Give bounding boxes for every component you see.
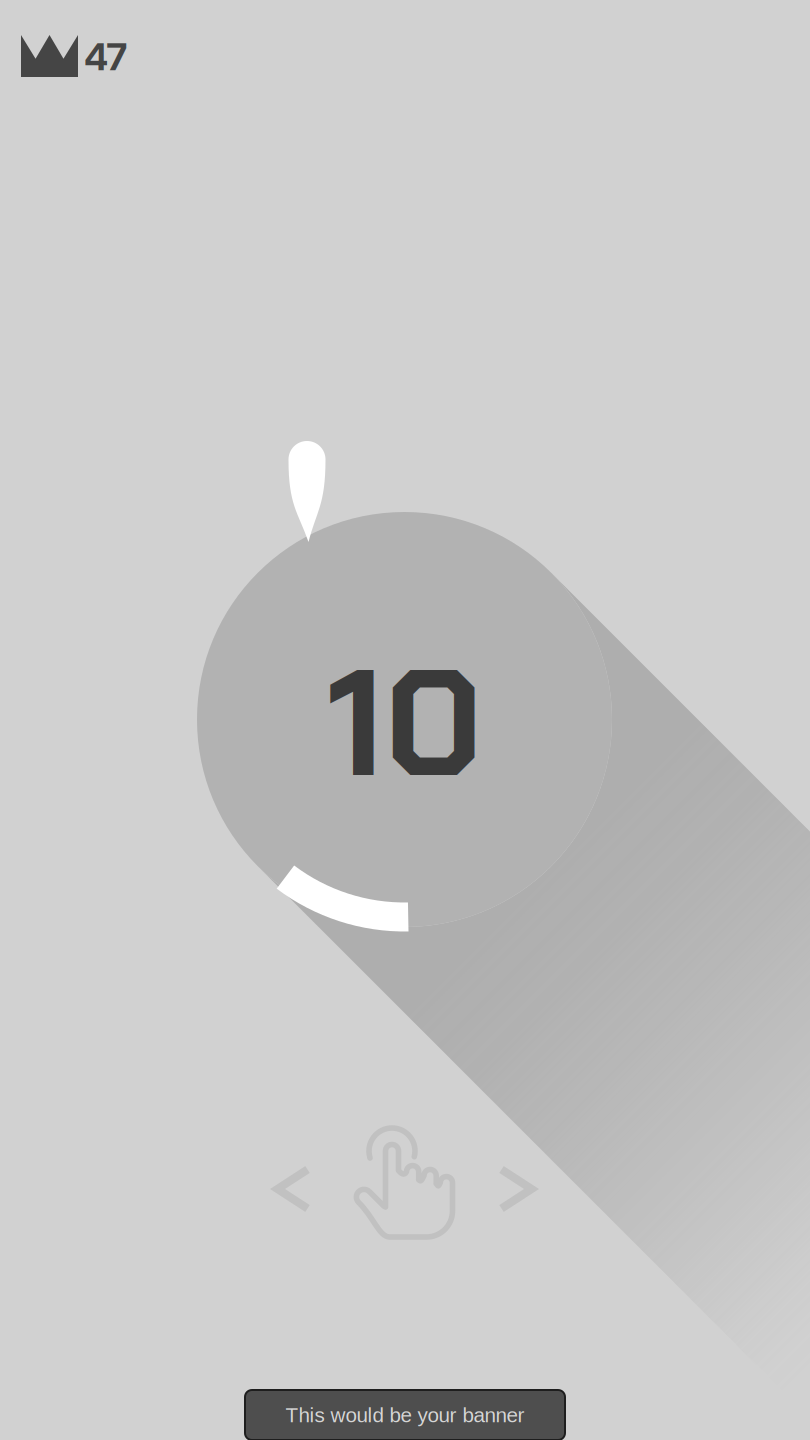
button[interactable]: This would be your banner (245, 1390, 565, 1440)
button[interactable]: Next (477, 1145, 555, 1232)
staticText: This would be your banner (285, 1403, 524, 1427)
staticText: 47 (85, 32, 127, 82)
staticText: 10 (326, 626, 482, 821)
button[interactable]: Previous (253, 1145, 331, 1232)
